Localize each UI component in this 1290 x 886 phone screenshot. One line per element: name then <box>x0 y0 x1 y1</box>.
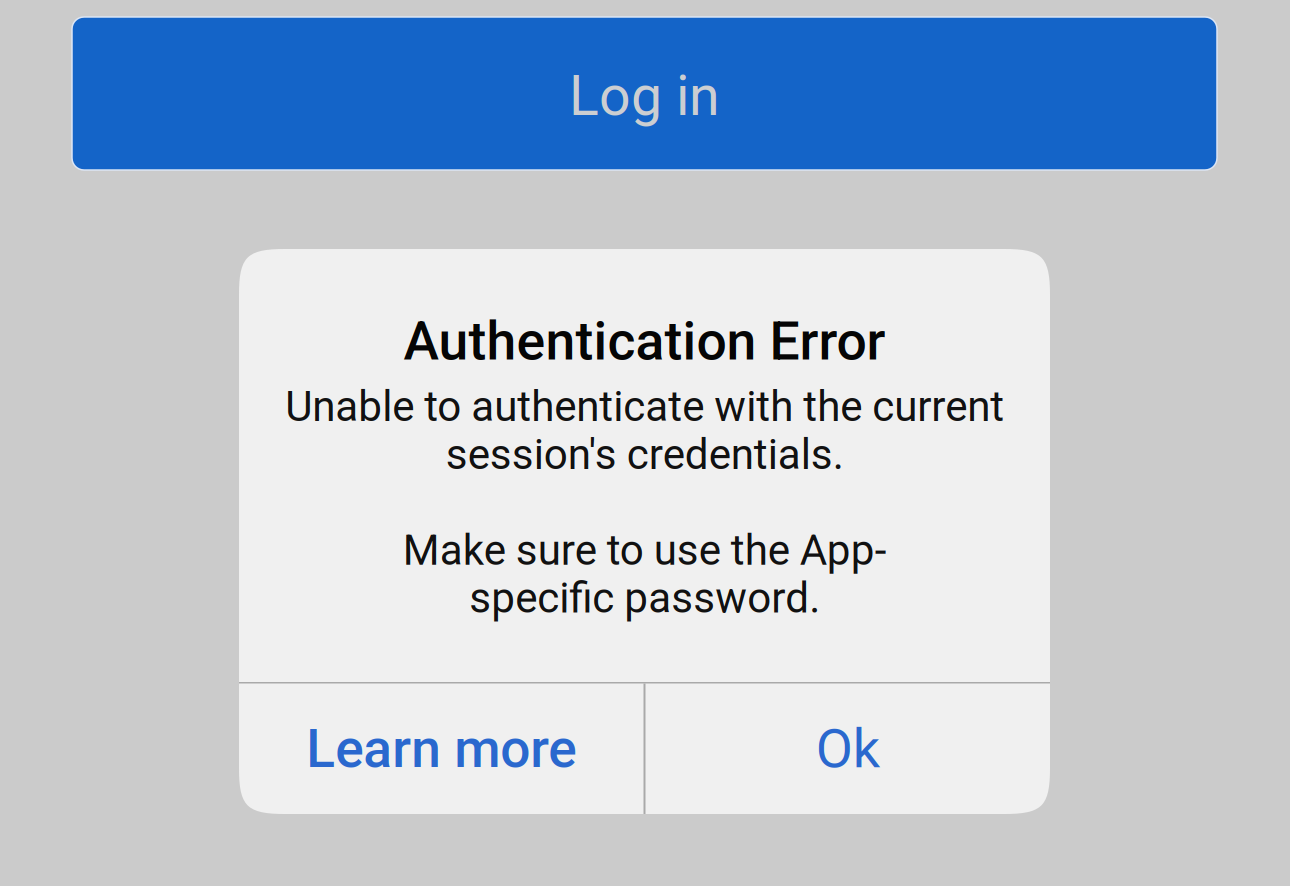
button[interactable]: Learn more <box>239 683 643 814</box>
staticText: Ok <box>816 717 880 780</box>
staticText: Authentication Error <box>403 310 885 373</box>
staticText: Unable to authenticate with the current … <box>285 382 1004 623</box>
button[interactable]: Log in <box>72 17 1217 170</box>
button[interactable]: Ok <box>645 683 1050 814</box>
staticText: Log in <box>569 64 720 128</box>
staticText: Learn more <box>306 718 576 780</box>
